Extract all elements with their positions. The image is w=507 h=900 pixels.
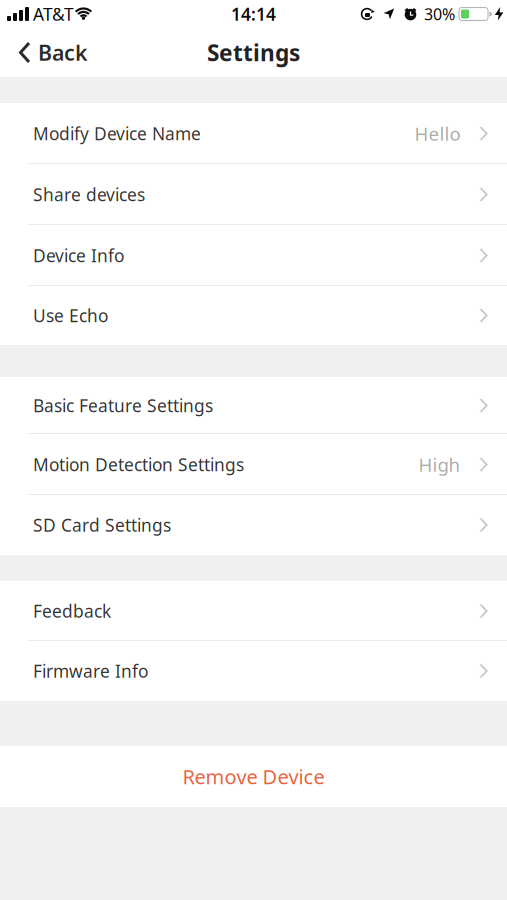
staticText: Firmware Info: [33, 659, 148, 682]
button[interactable]: Share devices: [0, 164, 507, 225]
button[interactable]: Device Info: [0, 225, 507, 286]
staticText: Hello: [414, 121, 460, 146]
button[interactable]: Remove Device: [0, 746, 507, 807]
staticText: AT&T: [33, 2, 74, 25]
staticText: Settings: [207, 37, 300, 67]
staticText: Share devices: [33, 183, 145, 206]
button[interactable]: SD Card Settings: [0, 495, 507, 555]
staticText: Remove Device: [182, 763, 324, 790]
button[interactable]: Use Echo: [0, 286, 507, 345]
staticText: Device Info: [33, 244, 124, 267]
staticText: SD Card Settings: [33, 513, 171, 536]
button[interactable]: Basic Feature Settings: [0, 377, 507, 434]
staticText: Modify Device Name: [33, 122, 201, 145]
staticText: Use Echo: [33, 304, 108, 327]
staticText: 30%: [424, 3, 455, 25]
button[interactable]: Back: [0, 38, 98, 67]
button[interactable]: Feedback: [0, 581, 507, 641]
staticText: Back: [38, 38, 88, 67]
staticText: Basic Feature Settings: [33, 394, 213, 417]
staticText: High: [418, 452, 460, 477]
staticText: 14:14: [231, 2, 276, 25]
staticText: Motion Detection Settings: [33, 453, 244, 476]
button[interactable]: Modify Device Name: [0, 103, 507, 164]
button[interactable]: Firmware Info: [0, 641, 507, 701]
button[interactable]: Motion Detection Settings: [0, 434, 507, 495]
staticText: Feedback: [33, 599, 111, 622]
